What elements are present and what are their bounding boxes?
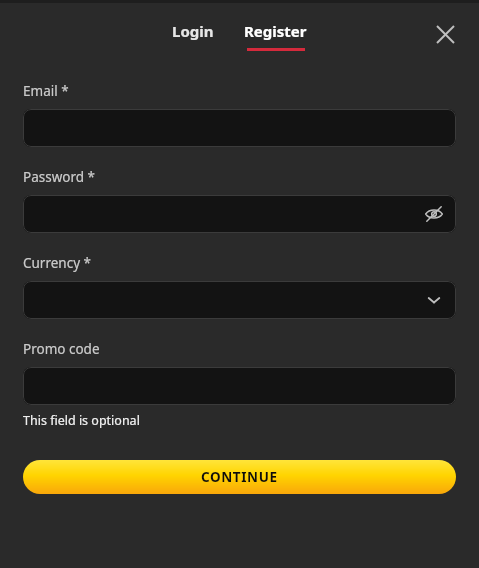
staticText: CONTINUE (201, 468, 278, 486)
button[interactable]: Login (162, 15, 224, 47)
button[interactable]: Show password (412, 195, 456, 233)
staticText: Login (172, 21, 214, 41)
staticText: This field is optional (23, 412, 140, 429)
staticText: Currency * (23, 254, 92, 272)
button[interactable]: Select currency (23, 281, 456, 319)
button[interactable] (23, 367, 456, 405)
button[interactable]: Close (423, 12, 467, 56)
staticText: Email * (23, 82, 69, 100)
button[interactable]: Select currency (412, 281, 456, 319)
staticText: Register (244, 21, 307, 41)
staticText: Password * (23, 168, 96, 186)
button[interactable] (23, 109, 456, 147)
button[interactable]: CONTINUE (23, 460, 456, 494)
button[interactable]: Register (234, 15, 317, 51)
button[interactable]: Show password (23, 195, 456, 233)
staticText: Promo code (23, 340, 100, 358)
